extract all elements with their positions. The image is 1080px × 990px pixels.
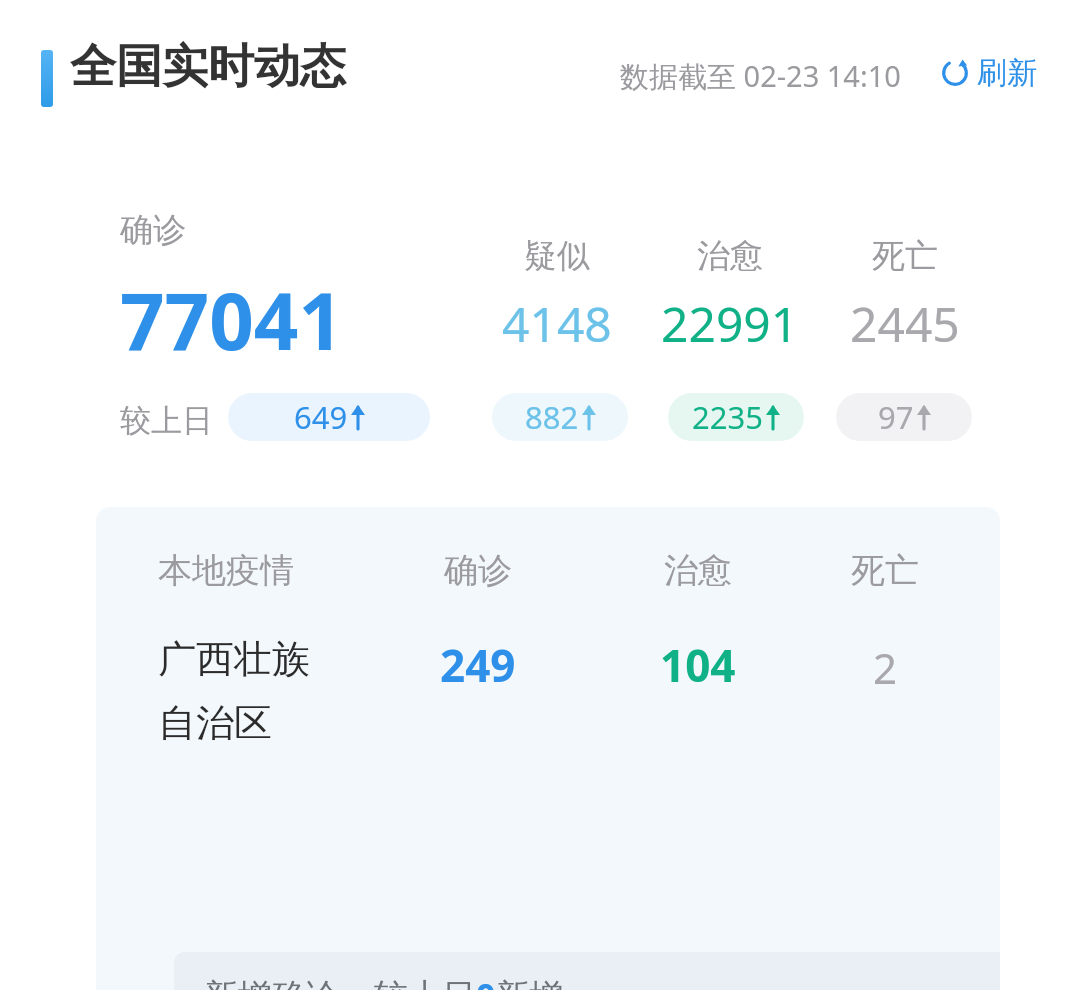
button[interactable]: 新增确诊：较上日0新增 bbox=[174, 952, 1000, 990]
staticText: 77041 bbox=[120, 267, 344, 373]
staticText: 数据截至 02-23 14:10 bbox=[620, 56, 901, 96]
staticText: 较上日 bbox=[120, 401, 213, 440]
button[interactable]: 刷新 bbox=[936, 48, 1041, 98]
staticText: 死亡 bbox=[872, 235, 938, 277]
staticText: 649 bbox=[294, 396, 348, 438]
staticText: 2445 bbox=[850, 291, 960, 356]
staticText: 确诊 bbox=[444, 549, 512, 592]
staticText: 882 bbox=[525, 396, 579, 438]
staticText: 治愈 bbox=[697, 235, 763, 277]
button[interactable]: 649 bbox=[228, 393, 430, 441]
staticText: 4148 bbox=[502, 291, 612, 356]
staticText: 治愈 bbox=[664, 549, 732, 592]
staticText: 22991 bbox=[661, 291, 799, 356]
staticText: 104 bbox=[660, 635, 736, 695]
staticText: 2235 bbox=[692, 396, 763, 438]
staticText: 2 bbox=[873, 639, 898, 696]
staticText: 全国实时动态 bbox=[70, 38, 346, 96]
button[interactable]: 97 bbox=[836, 393, 972, 441]
staticText: 97 bbox=[878, 396, 914, 438]
staticText: 新增确诊：较上日0新增 bbox=[204, 972, 564, 990]
staticText: 确诊 bbox=[120, 209, 186, 251]
staticText: 自治区 bbox=[158, 699, 272, 747]
staticText: 本地疫情 bbox=[158, 549, 294, 592]
staticText: 刷新 bbox=[977, 54, 1037, 92]
staticText: 广西壮族 bbox=[158, 635, 310, 683]
button[interactable]: 882 bbox=[492, 393, 628, 441]
staticText: 疑似 bbox=[524, 235, 590, 277]
staticText: 249 bbox=[440, 635, 516, 695]
staticText: 死亡 bbox=[851, 549, 919, 592]
button[interactable]: 2235 bbox=[668, 393, 804, 441]
